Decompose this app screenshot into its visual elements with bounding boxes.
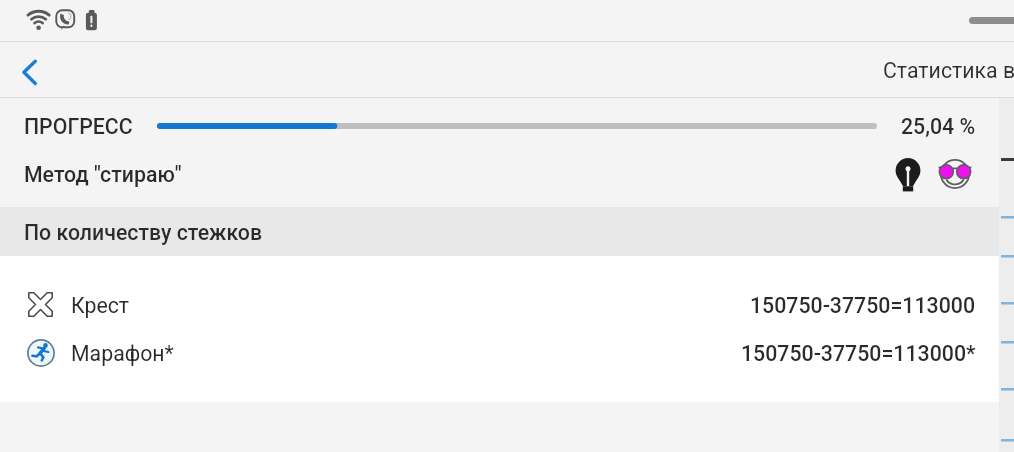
- staticText: 150750-37750=113000: [750, 293, 975, 318]
- button[interactable]: Mood: [934, 150, 976, 196]
- staticText: Крест: [71, 293, 130, 318]
- staticText: ПРОГРЕСС: [24, 114, 133, 139]
- button[interactable]: [0, 329, 1014, 377]
- staticText: По количеству стежков: [24, 220, 263, 245]
- staticText: Марафон*: [71, 341, 174, 366]
- staticText: 25,04 %: [901, 114, 976, 139]
- button[interactable]: [0, 280, 1014, 328]
- staticText: Метод "стираю": [24, 162, 182, 187]
- staticText: Статистика вы: [883, 58, 1014, 83]
- staticText: 150750-37750=113000*: [741, 341, 976, 366]
- button[interactable]: Hint: [888, 150, 928, 196]
- button[interactable]: Back: [4, 44, 52, 97]
